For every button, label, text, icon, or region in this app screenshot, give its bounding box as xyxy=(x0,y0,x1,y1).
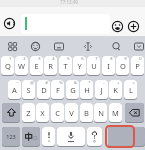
staticText: 2 xyxy=(23,56,26,61)
staticText: = xyxy=(132,80,135,85)
button[interactable]: N xyxy=(94,103,107,123)
button[interactable]: U xyxy=(87,56,100,76)
button[interactable]: P xyxy=(131,56,144,76)
button[interactable]: F xyxy=(51,80,64,100)
staticText: * xyxy=(88,80,91,85)
staticText: C xyxy=(55,108,60,118)
staticText: N xyxy=(98,108,104,118)
staticText: 6 xyxy=(81,56,84,61)
button[interactable] xyxy=(83,42,93,51)
staticText: # xyxy=(45,80,48,85)
button[interactable] xyxy=(87,127,102,147)
button[interactable] xyxy=(134,42,144,51)
staticText: Y xyxy=(77,61,82,71)
staticText: K xyxy=(113,85,118,95)
staticText: P xyxy=(135,61,140,71)
staticText: T xyxy=(63,61,68,71)
button[interactable]: Q xyxy=(1,56,14,76)
staticText: O xyxy=(120,61,126,71)
staticText: A xyxy=(12,85,17,95)
button[interactable]: R xyxy=(44,56,57,76)
staticText: 0 xyxy=(139,56,142,61)
staticText: ~ xyxy=(16,80,19,85)
button[interactable]: J xyxy=(95,80,108,100)
button[interactable] xyxy=(128,21,139,32)
button[interactable] xyxy=(42,127,55,147)
button[interactable]: H xyxy=(80,80,93,100)
staticText: - xyxy=(103,80,105,85)
staticText: G xyxy=(70,85,76,95)
staticText: F xyxy=(56,85,60,95)
button[interactable]: I xyxy=(102,56,115,76)
button[interactable]: B xyxy=(80,103,93,123)
button[interactable]: K xyxy=(109,80,122,100)
button[interactable] xyxy=(4,18,15,29)
staticText: 7 xyxy=(95,56,98,61)
staticText: + xyxy=(117,80,120,85)
button[interactable]: Z xyxy=(22,103,35,123)
staticText: Q xyxy=(5,61,11,71)
staticText: 3 xyxy=(38,56,41,61)
staticText: 5 xyxy=(67,56,70,61)
staticText: U xyxy=(91,61,97,71)
button[interactable]: X xyxy=(36,103,49,123)
button[interactable] xyxy=(31,42,40,51)
button[interactable]: C xyxy=(51,103,64,123)
button[interactable]: S xyxy=(22,80,35,100)
staticText: 8 xyxy=(110,56,113,61)
button[interactable] xyxy=(21,14,110,34)
staticText: B xyxy=(84,108,89,118)
staticText: X xyxy=(40,108,45,118)
button[interactable]: V xyxy=(65,103,78,123)
staticText: V xyxy=(69,108,74,118)
staticText: W xyxy=(18,61,25,71)
button[interactable]: M xyxy=(109,103,122,123)
button[interactable] xyxy=(108,127,145,147)
staticText: E xyxy=(34,61,39,71)
staticText: I xyxy=(107,61,110,71)
button[interactable] xyxy=(2,103,20,123)
button[interactable]: O xyxy=(116,56,129,76)
button[interactable]: G xyxy=(66,80,79,100)
staticText: S xyxy=(26,85,31,95)
button[interactable] xyxy=(54,42,64,51)
staticText: @ xyxy=(30,80,34,85)
staticText: D xyxy=(41,85,47,95)
staticText: 9 xyxy=(124,56,127,61)
staticText: H xyxy=(84,85,90,95)
button[interactable]: W xyxy=(15,56,28,76)
button[interactable]: Y xyxy=(73,56,86,76)
staticText: M xyxy=(112,108,119,118)
staticText: & xyxy=(74,80,77,85)
staticText: 123 xyxy=(6,133,16,140)
button[interactable] xyxy=(112,42,121,51)
button[interactable]: L xyxy=(124,80,137,100)
button[interactable] xyxy=(112,21,123,32)
staticText: % xyxy=(59,80,63,85)
staticText: 1 xyxy=(9,56,12,61)
button[interactable]: 123 xyxy=(2,127,20,147)
staticText: 77:12:49 xyxy=(60,0,78,5)
button[interactable]: T xyxy=(59,56,72,76)
button[interactable] xyxy=(8,42,17,51)
staticText: L xyxy=(129,85,133,95)
staticText: R xyxy=(48,61,53,71)
button[interactable]: A xyxy=(8,80,21,100)
staticText: 4 xyxy=(52,56,55,61)
button[interactable] xyxy=(125,103,144,123)
button[interactable] xyxy=(57,127,85,147)
staticText: Z xyxy=(26,108,31,118)
button[interactable]: E xyxy=(30,56,43,76)
button[interactable] xyxy=(22,127,40,147)
button[interactable]: D xyxy=(37,80,50,100)
staticText: J xyxy=(100,85,103,95)
